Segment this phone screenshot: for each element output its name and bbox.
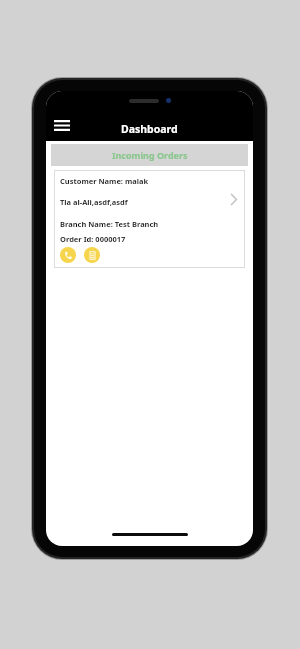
- staticText: Tla al-Ali,asdf,asdf: [60, 197, 128, 207]
- staticText: Customer Name: malak: [60, 176, 149, 186]
- staticText: Dashboard: [121, 122, 178, 136]
- staticText: Order Id: 0000017: [60, 234, 126, 244]
- staticText: Incoming Orders: [112, 149, 188, 161]
- button[interactable]: Open navigation menu: [49, 112, 75, 138]
- button[interactable]: Customer Name: malak: [54, 170, 245, 268]
- button[interactable]: View order document: [84, 247, 100, 263]
- staticText: Branch Name: Test Branch: [60, 219, 159, 229]
- button[interactable]: Incoming Orders: [51, 144, 248, 166]
- button[interactable]: Call customer: [60, 247, 76, 263]
